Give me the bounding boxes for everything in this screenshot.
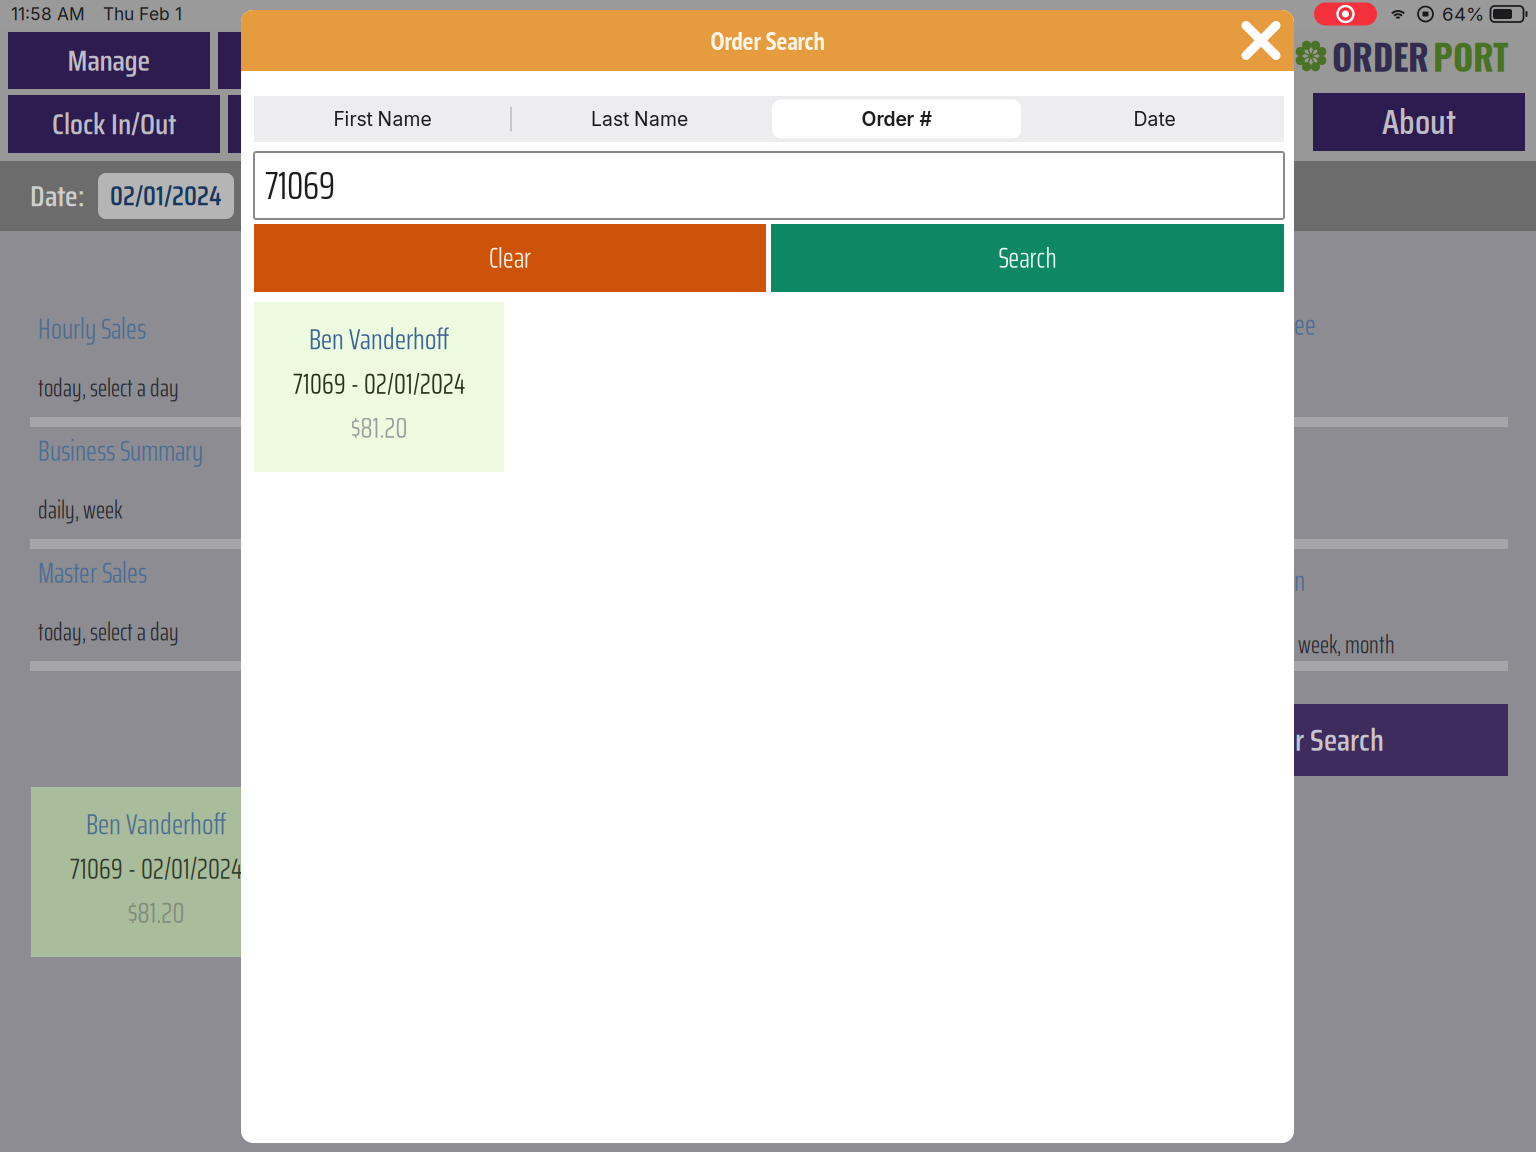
staticText: Settings — [706, 101, 791, 147]
button[interactable]: First Name — [254, 96, 511, 142]
staticText: 64% — [1442, 3, 1484, 25]
button[interactable]: Manage — [8, 32, 210, 89]
button[interactable]: 02/01/2024 — [98, 173, 234, 219]
staticText: PORT — [1433, 30, 1508, 82]
staticText: 71069 — [265, 155, 335, 216]
staticText: , week, month — [1290, 626, 1395, 664]
staticText: Tasting — [291, 101, 366, 147]
staticText: Order # — [861, 107, 931, 131]
button[interactable]: Clear — [254, 224, 766, 292]
button[interactable]: r Search — [1294, 704, 1508, 776]
staticText: Last Name — [591, 107, 688, 131]
button[interactable]: About — [1313, 93, 1525, 151]
staticText: Manage — [67, 37, 150, 84]
staticText: $81.20 — [350, 406, 407, 450]
button[interactable]: Reports — [218, 32, 420, 89]
staticText: Reports — [278, 37, 359, 84]
button[interactable]: Order # — [768, 96, 1025, 142]
staticText: Club — [717, 37, 761, 84]
staticText: Clear — [489, 236, 531, 280]
staticText: ee — [1294, 303, 1316, 347]
staticText: About — [1382, 95, 1456, 149]
button[interactable]: Tasting — [228, 95, 430, 153]
staticText: Inventory — [478, 37, 579, 84]
staticText: Master Sales — [38, 551, 147, 595]
button[interactable]: Master Sales — [30, 549, 1508, 671]
staticText: n — [1294, 559, 1305, 603]
button[interactable]: Help — [858, 95, 1060, 153]
staticText: Hourly Sales — [38, 307, 146, 351]
staticText: daily, week — [38, 491, 122, 529]
staticText: Date: — [30, 173, 84, 219]
button[interactable]: Inventory — [428, 32, 630, 89]
staticText: Help — [935, 101, 982, 147]
button[interactable]: Close — [1240, 19, 1282, 61]
button[interactable]: Search — [771, 224, 1284, 292]
staticText: Ben Vanderhoff — [309, 316, 449, 362]
button[interactable]: Date — [1025, 96, 1284, 142]
staticText: Customers — [894, 37, 1004, 84]
staticText: today, select a day — [38, 613, 179, 651]
button[interactable]: Hourly Sales — [30, 305, 1508, 427]
staticText: Order Search — [710, 24, 824, 57]
button[interactable]: Business Summary — [30, 427, 1508, 549]
staticText: r Search — [1295, 716, 1384, 764]
staticText: 71069 - 02/01/2024 — [293, 362, 465, 406]
button[interactable]: Clock In/Out — [8, 95, 220, 153]
staticText: 02/01/2024 — [110, 175, 222, 217]
staticText: First Name — [333, 107, 431, 131]
button[interactable]: Settings — [648, 95, 850, 153]
button[interactable]: Last Name — [511, 96, 768, 142]
staticText: Clock In/Out — [52, 101, 176, 147]
button[interactable]: Club — [638, 32, 840, 89]
staticText: 71069 - 02/01/2024 — [70, 847, 242, 891]
staticText: Ben Vanderhoff — [86, 801, 226, 847]
staticText: 11:58 AM — [11, 3, 85, 24]
staticText: ORDER — [1332, 30, 1429, 82]
staticText: Thu Feb 1 — [103, 3, 182, 24]
staticText: today, select a day — [38, 369, 179, 407]
button[interactable]: Orders — [438, 95, 640, 153]
staticText: Search — [998, 236, 1056, 280]
staticText: Orders — [504, 101, 574, 147]
button[interactable]: Ben Vanderhoff — [254, 302, 504, 472]
staticText: Business Summary — [38, 429, 203, 473]
staticText: Date — [1133, 107, 1175, 131]
staticText: $81.20 — [127, 891, 184, 935]
button[interactable]: Customers — [848, 32, 1050, 89]
